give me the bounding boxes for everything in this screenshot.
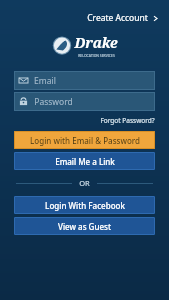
staticText: Login with Email & Password	[30, 135, 140, 146]
staticText: RELOCATION SERVICES	[78, 53, 115, 58]
staticText: Create Account	[87, 12, 148, 24]
button[interactable]: Create Account	[77, 9, 169, 27]
staticText: Forgot Password?	[100, 116, 155, 125]
button[interactable]: Password	[14, 92, 155, 111]
button[interactable]: Email Me a Link	[14, 152, 155, 170]
staticText: Email Me a Link	[55, 156, 115, 167]
button[interactable]: Forgot Password?	[86, 115, 169, 126]
staticText: Login With Facebook	[45, 200, 125, 211]
button[interactable]: Login With Facebook	[14, 196, 155, 214]
staticText: Password	[34, 96, 73, 108]
staticText: OR	[79, 178, 90, 188]
button[interactable]: Email	[14, 71, 155, 90]
staticText: Email	[34, 75, 56, 87]
staticText: Drake	[74, 33, 118, 52]
button[interactable]: View as Guest	[14, 217, 155, 235]
button[interactable]: Login with Email & Password	[14, 131, 155, 149]
staticText: View as Guest	[58, 221, 111, 232]
